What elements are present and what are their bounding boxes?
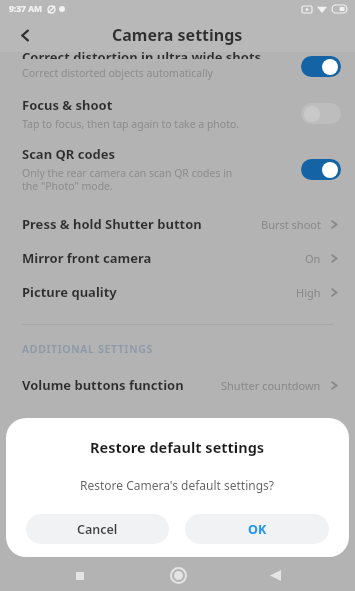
button[interactable]: Scan QR codes (0, 145, 355, 193)
staticText: Camera settings (112, 24, 243, 46)
staticText: Focus & shoot (22, 96, 113, 114)
staticText: Picture quality (22, 283, 296, 301)
button[interactable]: Cancel (26, 514, 169, 544)
button[interactable]: Back (258, 560, 292, 591)
staticText: Burst shoot (261, 217, 321, 232)
staticText: High (296, 285, 321, 300)
staticText: Cancel (77, 521, 118, 538)
staticText: Correct distorted objects automatically (22, 66, 213, 80)
staticText: Shutter countdown (221, 378, 321, 393)
button[interactable]: Recent apps (63, 560, 97, 591)
button[interactable]: Volume buttons function (0, 370, 355, 400)
staticText: Press & hold Shutter button (22, 215, 261, 233)
staticText: Restore Camera's default settings? (80, 477, 275, 493)
staticText: On (305, 251, 321, 266)
staticText: OK (248, 521, 267, 538)
button[interactable]: OK (185, 514, 329, 544)
button[interactable]: On (301, 56, 341, 77)
staticText: Correct distortion in ultra wide shots (22, 52, 262, 59)
button[interactable]: On (301, 159, 341, 180)
staticText: 9:37 AM (9, 3, 43, 15)
button[interactable]: Back (10, 20, 40, 50)
button[interactable]: Picture quality (0, 275, 355, 309)
staticText: Scan QR codes (22, 145, 116, 163)
button[interactable]: Off (301, 103, 341, 124)
button[interactable]: Press & hold Shutter button (0, 207, 355, 241)
staticText: Volume buttons function (22, 376, 221, 394)
staticText: Tap to focus, then tap again to take a p… (22, 117, 240, 131)
button[interactable]: Correct distortion in ultra wide shots (0, 52, 355, 80)
staticText: Only the rear camera can scan QR codes i… (22, 166, 233, 193)
button[interactable]: Mirror front camera (0, 241, 355, 275)
button[interactable]: Home (161, 560, 195, 591)
staticText: Mirror front camera (22, 249, 305, 267)
button[interactable]: Focus & shoot (0, 96, 355, 131)
staticText: ADDITIONAL SETTINGS (22, 342, 153, 356)
staticText: Restore default settings (90, 437, 265, 457)
